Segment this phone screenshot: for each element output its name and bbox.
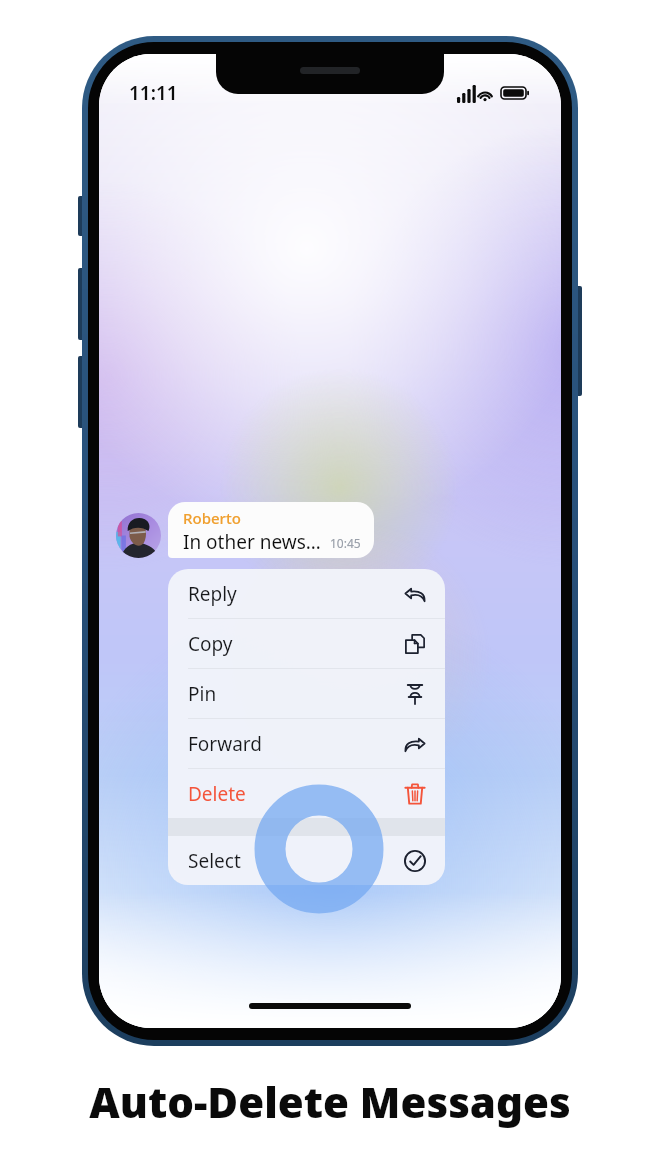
- other: Reply: [403, 582, 427, 606]
- staticText: Copy: [188, 631, 233, 657]
- staticText: In other news…: [183, 529, 321, 552]
- staticText: Pin: [188, 681, 217, 707]
- other: Delete: [403, 782, 427, 806]
- other: Copy: [403, 632, 427, 656]
- other: Select: [403, 849, 427, 873]
- button[interactable]: Forward: [168, 719, 445, 768]
- staticText: 11:11: [129, 80, 178, 106]
- staticText: Delete: [188, 781, 246, 807]
- staticText: Select: [188, 848, 241, 874]
- button[interactable]: Reply: [168, 569, 445, 618]
- other: Pin: [403, 682, 427, 706]
- button[interactable]: Select: [168, 836, 445, 885]
- staticText: Auto-Delete Messages: [89, 1073, 571, 1130]
- staticText: Forward: [188, 731, 262, 757]
- button[interactable]: Roberto: [168, 502, 374, 558]
- button[interactable]: Delete: [168, 769, 445, 818]
- staticText: Roberto: [183, 508, 241, 528]
- staticText: 10:45: [330, 535, 361, 551]
- button[interactable]: Pin: [168, 669, 445, 718]
- staticText: Reply: [188, 581, 237, 607]
- button[interactable]: Copy: [168, 619, 445, 668]
- other: Forward: [403, 732, 427, 756]
